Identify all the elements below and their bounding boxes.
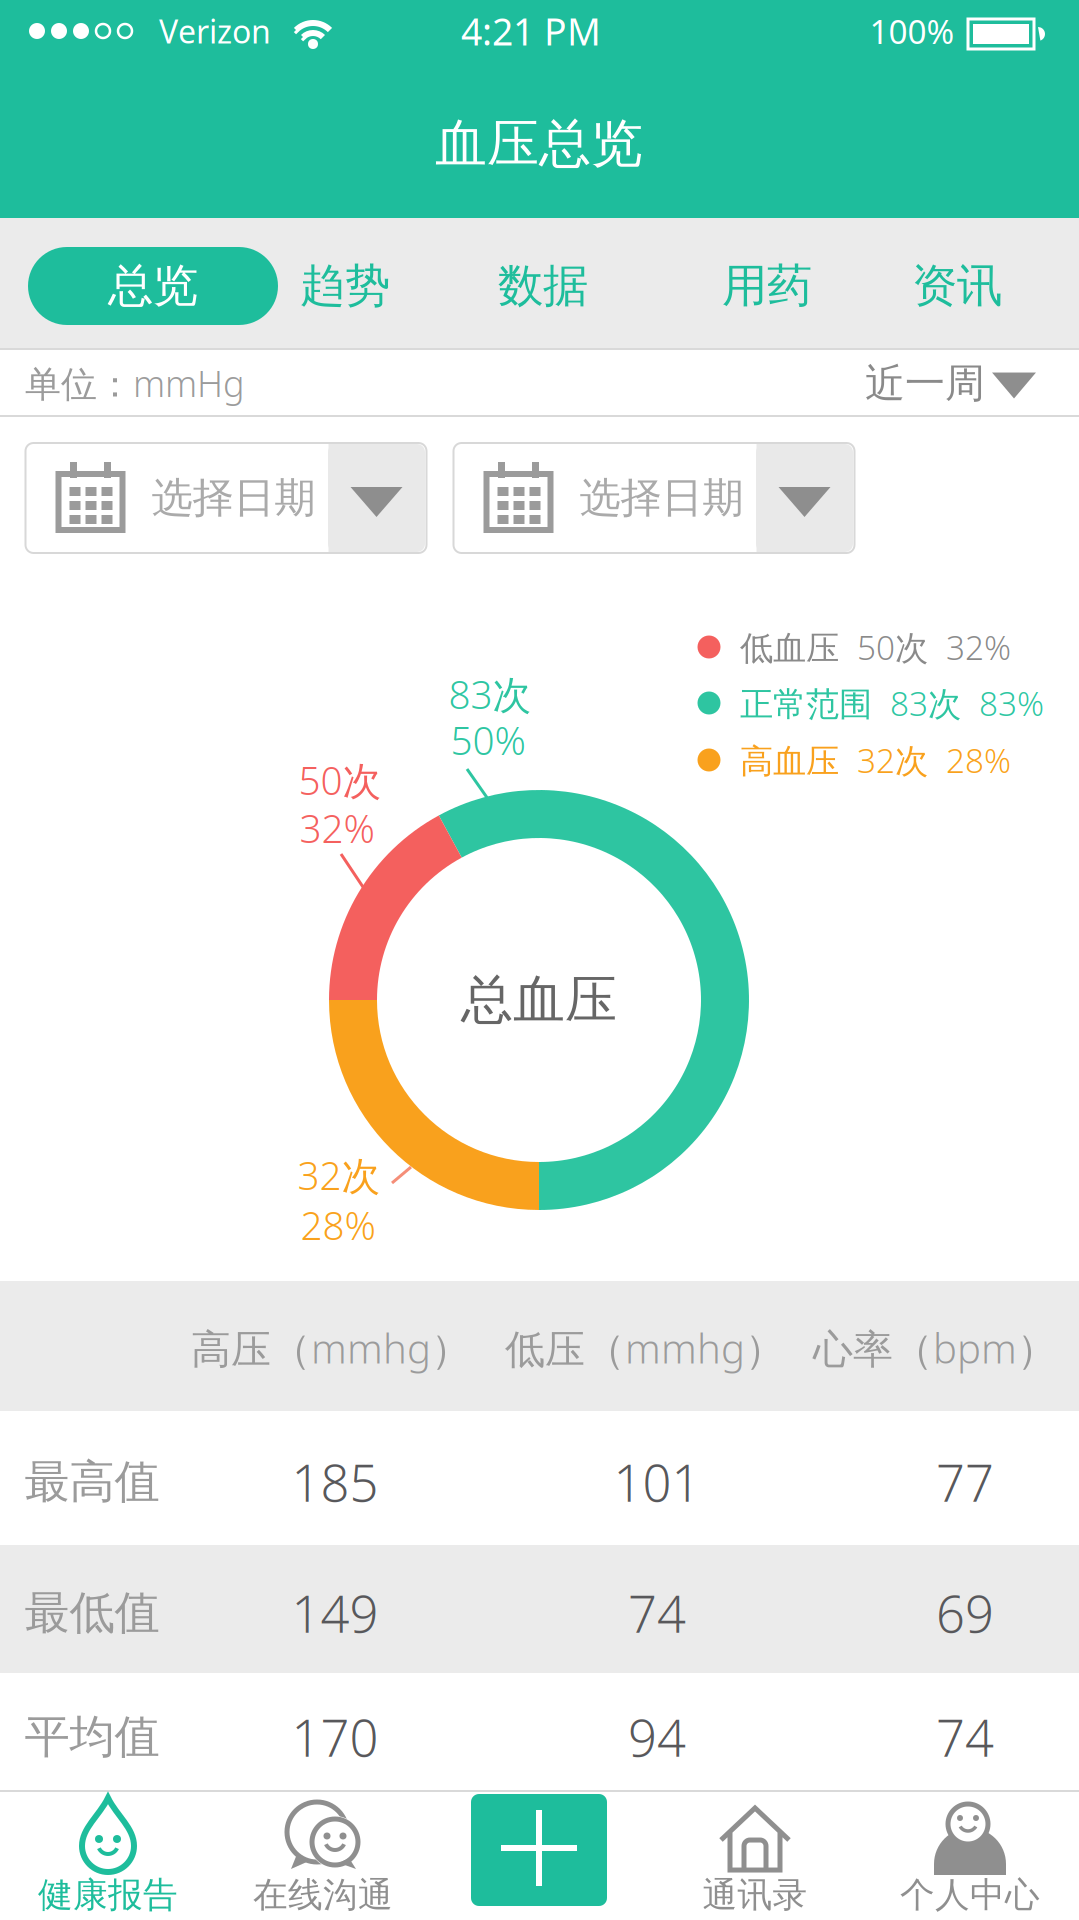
staticText: 最高值 [24, 1454, 159, 1510]
staticText: 149 [291, 1579, 378, 1647]
staticText: 83次 [448, 668, 531, 720]
staticText: 总血压 [461, 968, 617, 1032]
staticText: 100% [869, 9, 954, 53]
staticText: 最低值 [24, 1585, 159, 1641]
staticText: 正常范围 83次 83% [740, 681, 1044, 725]
staticText: 单位：mmHg [25, 359, 245, 407]
staticText: 平均值 [24, 1709, 159, 1765]
staticText: 低压（mmhg） [505, 1321, 785, 1374]
staticText: 101 [613, 1448, 700, 1516]
staticText: 74 [628, 1579, 686, 1647]
staticText: 4:21 PM [461, 6, 601, 56]
staticText: 50% [450, 714, 525, 766]
button[interactable]: 近一周 [860, 350, 1046, 415]
staticText: 77 [936, 1448, 994, 1516]
staticText: 94 [628, 1703, 686, 1771]
staticText: 170 [291, 1703, 378, 1771]
staticText: 选择日期 [151, 473, 315, 523]
button[interactable]: 选择日期 [25, 443, 426, 553]
button[interactable]: 趋势 [265, 247, 425, 325]
button[interactable]: 通讯录 [647, 1792, 863, 1920]
staticText: 32次 [297, 1149, 380, 1201]
staticText: 个人中心 [900, 1874, 1040, 1916]
staticText: 资讯 [912, 258, 1002, 314]
staticText: 趋势 [300, 258, 390, 314]
staticText: 185 [291, 1448, 378, 1516]
button[interactable]: 资讯 [877, 247, 1037, 325]
staticText: 健康报告 [38, 1874, 178, 1916]
staticText: 用药 [722, 258, 812, 314]
staticText: 28% [300, 1199, 375, 1251]
staticText: 高压（mmhg） [191, 1321, 471, 1374]
staticText: 数据 [498, 258, 588, 314]
staticText: 74 [936, 1703, 994, 1771]
staticText: 心率（bpm） [813, 1321, 1057, 1374]
staticText: 近一周 [865, 359, 985, 408]
button[interactable]: 在线沟通 [215, 1792, 431, 1920]
staticText: Verizon [159, 10, 271, 52]
button[interactable]: 添加记录 [471, 1794, 607, 1906]
staticText: 50次 [298, 754, 381, 806]
staticText: 低血压 50次 32% [740, 625, 1011, 669]
staticText: 在线沟通 [253, 1874, 393, 1916]
staticText: 32% [299, 802, 374, 854]
button[interactable]: 健康报告 [0, 1792, 216, 1920]
staticText: 69 [936, 1579, 994, 1647]
staticText: 血压总览 [435, 112, 643, 176]
staticText: 选择日期 [579, 473, 743, 523]
button[interactable]: 个人中心 [862, 1792, 1078, 1920]
button[interactable]: 选择日期 [453, 443, 854, 553]
button[interactable]: 用药 [687, 247, 847, 325]
staticText: 通讯录 [702, 1874, 807, 1916]
button[interactable]: 总览 [28, 247, 278, 325]
button[interactable]: 数据 [463, 247, 623, 325]
staticText: 高血压 32次 28% [740, 738, 1011, 782]
staticText: 总览 [108, 258, 198, 314]
